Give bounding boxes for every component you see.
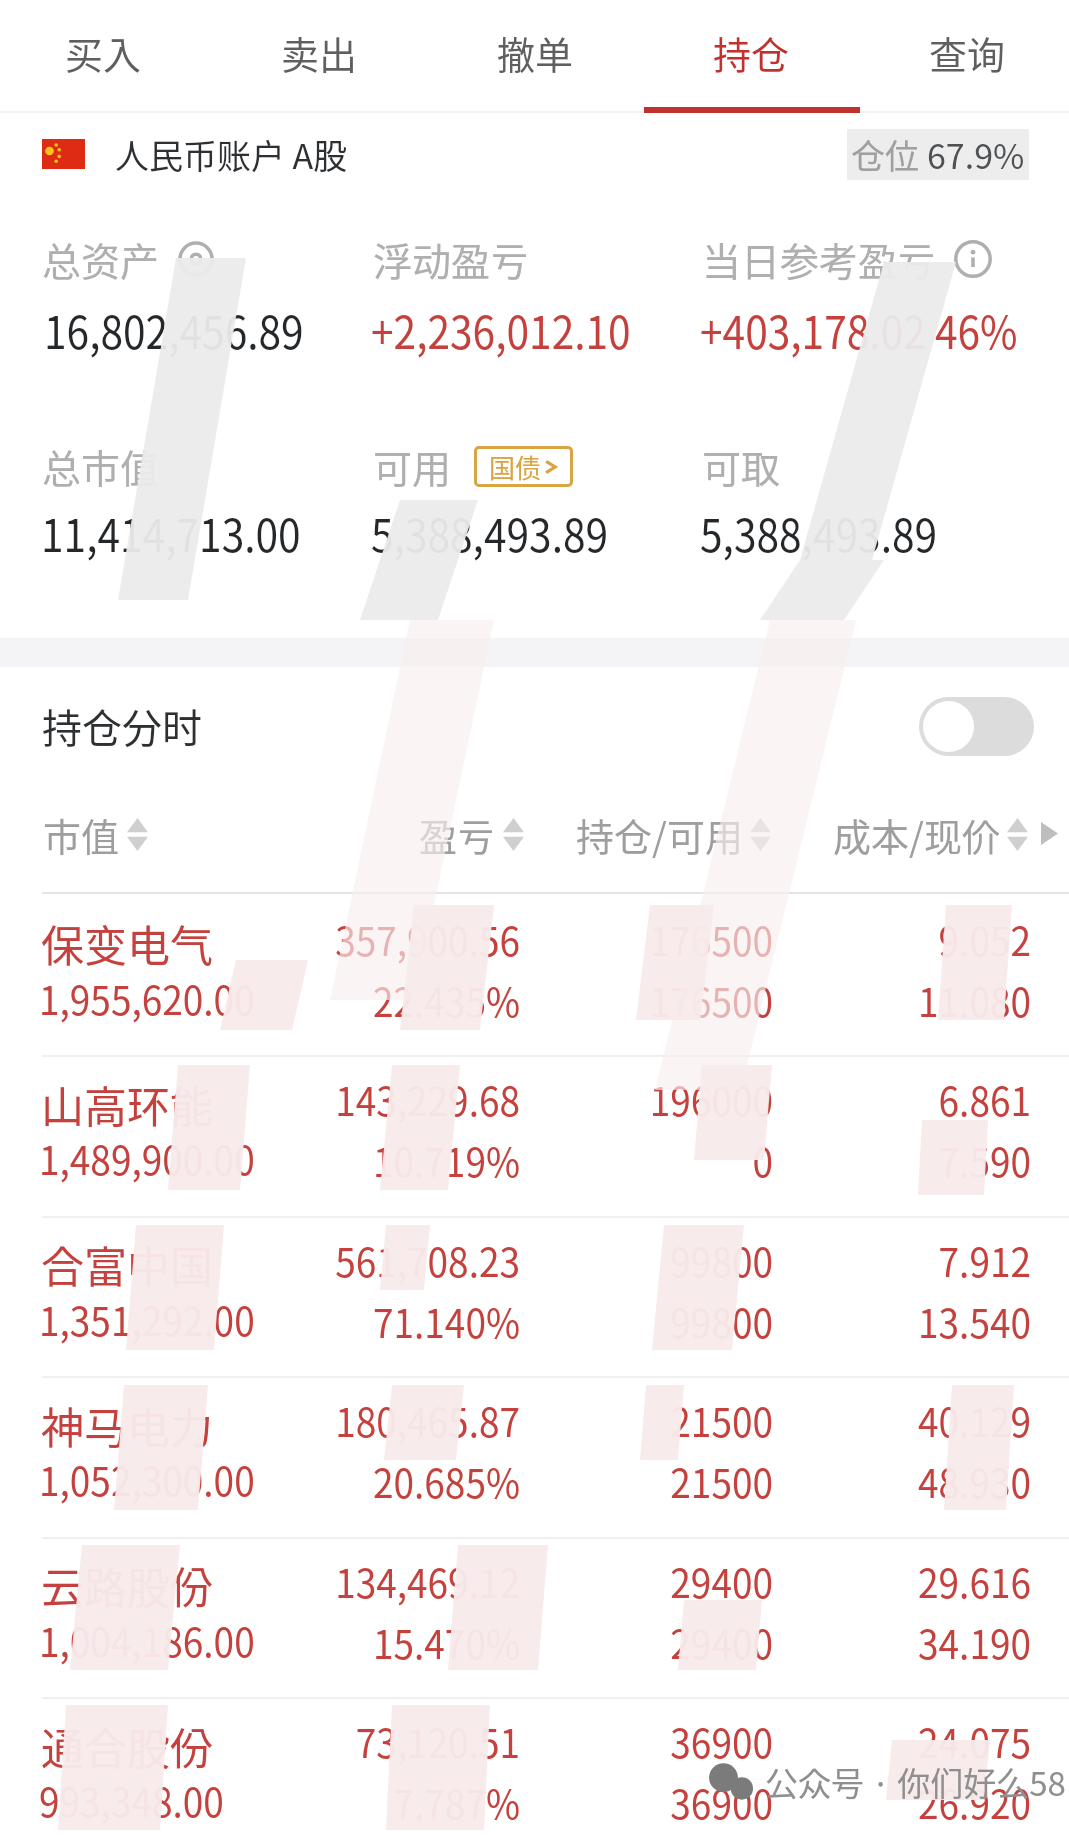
staticText: 5,388,493.89	[371, 499, 609, 565]
staticText: 29400	[292, 1552, 773, 1610]
staticText: 9.052	[550, 910, 1031, 968]
staticText: 99800	[292, 1292, 773, 1350]
other: Info	[953, 239, 993, 279]
staticText: 36900	[292, 1712, 773, 1770]
staticText: 1,955,620.00	[39, 969, 255, 1027]
staticText: 134,469.12	[39, 1552, 520, 1610]
staticText: 持仓/可用	[576, 807, 743, 862]
staticText: 21500	[292, 1452, 773, 1510]
staticText: 买入	[65, 25, 142, 80]
staticText: 云路股份	[41, 1554, 213, 1616]
other: Hide balance	[176, 239, 216, 279]
staticText: 总市值	[42, 438, 160, 494]
staticText: 撤单	[497, 25, 574, 80]
staticText: 22.435%	[39, 971, 520, 1029]
staticText: 10.719%	[39, 1131, 520, 1189]
button[interactable]	[0, 1376, 1069, 1537]
staticText: 持仓分时	[42, 697, 202, 755]
staticText: 73,120.51	[39, 1712, 520, 1770]
staticText: 40.129	[550, 1391, 1031, 1449]
staticText: 48.930	[550, 1452, 1031, 1510]
staticText: 71.140%	[39, 1292, 520, 1350]
button[interactable]: 卖出	[211, 0, 427, 112]
button[interactable]: 盈亏	[419, 807, 524, 862]
staticText: 保变电气	[41, 912, 213, 974]
staticText: 29400	[292, 1613, 773, 1671]
staticText: +403,178.02 46%	[700, 296, 1018, 362]
button[interactable]: 国债	[474, 446, 573, 487]
button[interactable]	[0, 1536, 1069, 1697]
staticText: 1,351,292.00	[39, 1290, 255, 1348]
button[interactable]: 查询	[859, 0, 1069, 112]
staticText: 13.540	[550, 1292, 1031, 1350]
staticText: 180,465.87	[39, 1391, 520, 1449]
staticText: 176500	[292, 910, 773, 968]
staticText: 公众号 · 你们好么58	[765, 1758, 1066, 1806]
staticText: 176500	[292, 971, 773, 1029]
staticText: 5,388,493.89	[700, 499, 938, 565]
staticText: 仓位	[851, 130, 927, 179]
staticText: 可用	[373, 438, 452, 494]
staticText: 盈亏	[419, 807, 496, 862]
button[interactable]: Toggle intraday chart	[919, 697, 1034, 756]
staticText: 通合股份	[41, 1715, 213, 1777]
staticText: 20.685%	[39, 1452, 520, 1510]
button[interactable]	[0, 1697, 1069, 1836]
staticText: 持仓	[713, 25, 790, 80]
staticText: 浮动盈亏	[373, 231, 530, 287]
staticText: 市值	[43, 807, 120, 862]
staticText: 36900	[292, 1773, 773, 1831]
staticText: 合富中国	[41, 1233, 213, 1295]
staticText: 21500	[292, 1391, 773, 1449]
button[interactable]: 撤单	[427, 0, 643, 112]
staticText: 26.920	[550, 1773, 1031, 1831]
staticText: 总资产	[42, 231, 160, 287]
staticText: 0	[292, 1131, 773, 1189]
staticText: 561,708.23	[39, 1231, 520, 1289]
staticText: 196000	[292, 1070, 773, 1128]
staticText: 1,489,900.00	[39, 1129, 255, 1187]
staticText: 11,414,713.00	[41, 499, 301, 565]
staticText: 6.861	[550, 1070, 1031, 1128]
button[interactable]	[0, 1055, 1069, 1216]
staticText: 34.190	[550, 1613, 1031, 1671]
staticText: 可取	[702, 438, 781, 494]
button[interactable]	[0, 894, 1069, 1055]
staticText: 99800	[292, 1231, 773, 1289]
button[interactable]: 买入	[0, 0, 211, 112]
staticText: 15.470%	[39, 1613, 520, 1671]
staticText: 7.912	[550, 1231, 1031, 1289]
staticText: 24.075	[550, 1712, 1031, 1770]
staticText: 357,900.56	[39, 910, 520, 968]
staticText: 山高环能	[41, 1073, 213, 1135]
staticText: 神马电力	[41, 1394, 213, 1456]
staticText: 143,229.68	[39, 1070, 520, 1128]
staticText: 67.9%	[927, 130, 1025, 179]
staticText: 1,052,300.00	[39, 1450, 255, 1508]
button[interactable]: 仓位	[847, 129, 1029, 180]
staticText: 成本/现价	[833, 807, 1000, 862]
staticText: +2,236,012.10	[371, 296, 631, 362]
staticText: 29.616	[550, 1552, 1031, 1610]
staticText: 国债	[489, 448, 542, 486]
staticText: 7.590	[550, 1131, 1031, 1189]
staticText: 1,004,186.00	[39, 1611, 255, 1669]
button[interactable]: 持仓	[643, 0, 859, 112]
button[interactable]	[0, 1215, 1069, 1376]
staticText: 人民币账户 A股	[115, 130, 348, 179]
button[interactable]: 成本/现价	[833, 807, 1028, 862]
staticText: 7.787%	[39, 1773, 520, 1831]
staticText: 16,802,456.89	[44, 296, 304, 362]
button[interactable]: 持仓/可用	[576, 807, 771, 862]
staticText: 11.080	[550, 971, 1031, 1029]
staticText: 卖出	[281, 25, 358, 80]
staticText: 993,348.00	[39, 1771, 224, 1829]
staticText: 查询	[929, 25, 1006, 80]
button[interactable]: 市值	[43, 807, 148, 862]
staticText: 当日参考盈亏	[702, 231, 937, 287]
